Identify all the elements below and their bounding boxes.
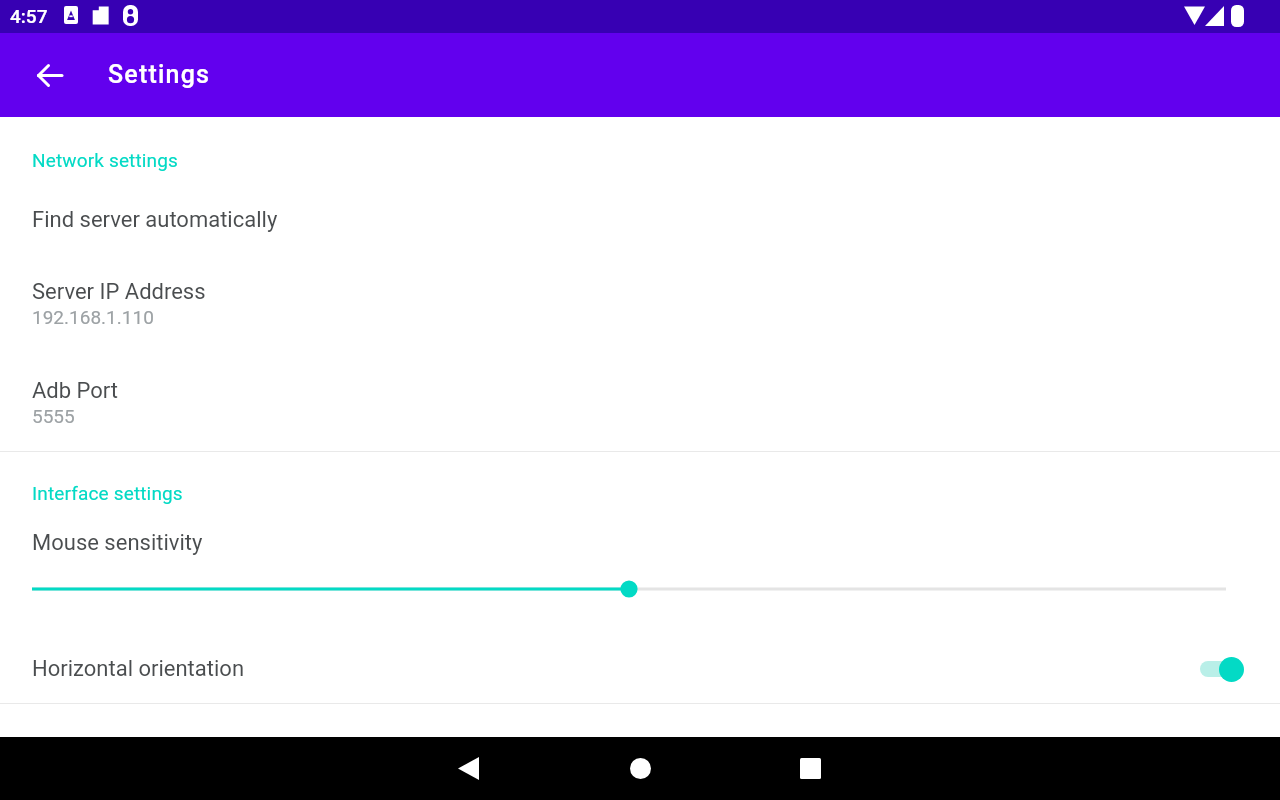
button[interactable]: Recent apps [782, 737, 838, 800]
staticText: 5555 [32, 405, 75, 427]
button[interactable]: Find server automatically [0, 186, 1280, 248]
button[interactable]: Horizontal orientation [0, 645, 1280, 693]
staticText: Horizontal orientation [32, 656, 245, 682]
button[interactable]: Mouse sensitivity [0, 512, 1280, 602]
button[interactable]: Adb Port [0, 357, 1280, 429]
staticText: Server IP Address [32, 279, 206, 305]
staticText: Network settings [32, 149, 179, 171]
staticText: Find server automatically [32, 207, 278, 233]
button[interactable]: Back [440, 737, 496, 800]
button[interactable]: Home [612, 737, 668, 800]
staticText: Interface settings [32, 482, 183, 504]
staticText: Adb Port [32, 378, 119, 404]
button[interactable]: Server IP Address [0, 258, 1280, 330]
staticText: 4:57 [10, 5, 48, 27]
staticText: 192.168.1.110 [32, 306, 154, 328]
staticText: Settings [108, 60, 211, 89]
button[interactable]: Back [20, 46, 78, 104]
staticText: Mouse sensitivity [32, 530, 203, 556]
